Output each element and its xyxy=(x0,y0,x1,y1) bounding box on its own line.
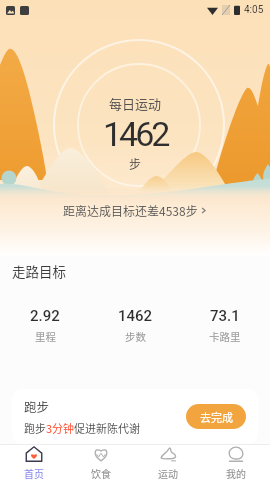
staticText: 73.1 xyxy=(210,307,240,325)
staticText: 2.92 xyxy=(30,307,60,325)
staticText: 跑步 xyxy=(24,397,50,415)
button[interactable]: 首页 xyxy=(0,445,67,480)
staticText: 步 xyxy=(129,155,142,172)
button[interactable]: 去完成 xyxy=(186,404,246,429)
button[interactable]: 饮食 xyxy=(67,445,134,480)
button[interactable]: 跑步 xyxy=(12,389,258,444)
staticText: 饮食 xyxy=(91,466,111,480)
staticText: 每日运动 xyxy=(109,94,162,113)
staticText: 里程 xyxy=(35,329,56,344)
staticText: 跑步3分钟促进新陈代谢 xyxy=(24,420,141,436)
staticText: 我的 xyxy=(226,466,246,480)
staticText: 卡路里 xyxy=(209,329,241,344)
button[interactable]: 我的 xyxy=(202,445,270,480)
button[interactable]: 距离达成目标还差4538步 xyxy=(61,200,209,221)
staticText: 4:05 xyxy=(244,4,264,16)
staticText: 走路目标 xyxy=(12,261,66,281)
staticText: 步数 xyxy=(125,329,146,344)
staticText: 1462 xyxy=(118,307,153,325)
staticText: 首页 xyxy=(24,466,44,480)
staticText: 运动 xyxy=(158,466,178,480)
staticText: 1462 xyxy=(103,114,168,154)
button[interactable]: 运动 xyxy=(134,445,202,480)
staticText: 去完成 xyxy=(200,409,233,425)
staticText: 距离达成目标还差4538步 xyxy=(63,202,198,219)
